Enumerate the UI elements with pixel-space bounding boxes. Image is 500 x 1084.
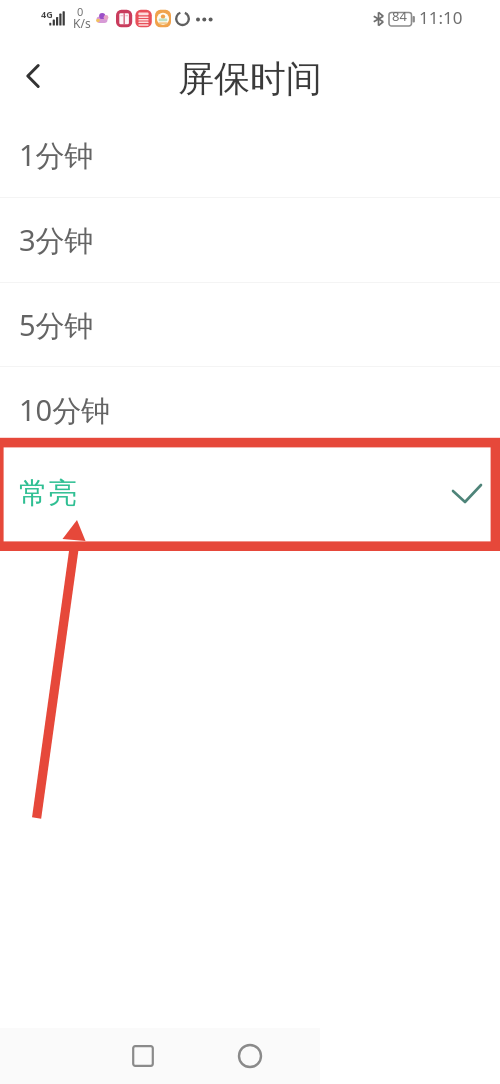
button[interactable]: 常亮 xyxy=(0,452,500,537)
staticText: 3分钟 xyxy=(19,220,94,260)
staticText: K/s xyxy=(73,15,91,31)
staticText: 5分钟 xyxy=(19,305,94,345)
button[interactable]: Back xyxy=(8,51,58,101)
button[interactable]: 1分钟 xyxy=(0,112,500,197)
staticText: 10分钟 xyxy=(19,390,111,430)
staticText: 4G xyxy=(41,8,53,20)
staticText: 1分钟 xyxy=(19,135,94,175)
staticText: 屏保时间 xyxy=(178,56,322,101)
button[interactable]: 5分钟 xyxy=(0,283,500,366)
staticText: 11:10 xyxy=(419,6,463,29)
button[interactable]: Recents xyxy=(112,1028,174,1084)
staticText: 0 xyxy=(77,4,84,19)
button[interactable]: Home xyxy=(219,1028,281,1084)
staticText: 常亮 xyxy=(19,475,77,512)
button[interactable]: 10分钟 xyxy=(0,367,500,452)
button[interactable]: 3分钟 xyxy=(0,198,500,282)
staticText: 84 xyxy=(392,7,407,25)
